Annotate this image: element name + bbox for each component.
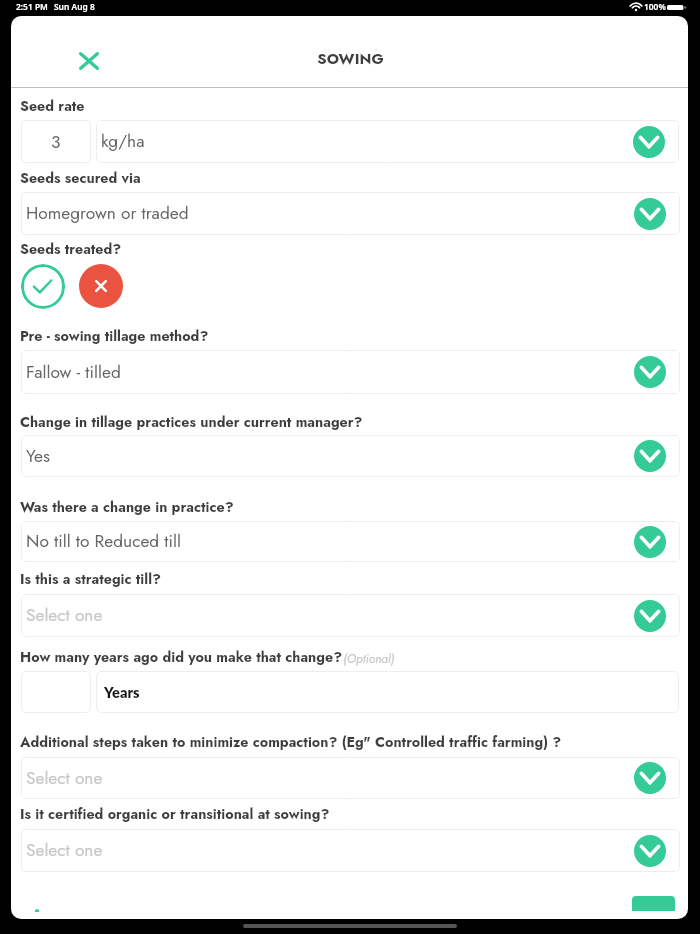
button[interactable]: Years (96, 671, 679, 713)
staticText: Select one (26, 602, 103, 627)
button[interactable]: Open dropdown (634, 198, 666, 230)
staticText: 3 (51, 129, 61, 154)
button[interactable]: No (79, 264, 123, 308)
staticText: Select one (26, 765, 103, 790)
button[interactable]: Select one (21, 757, 680, 799)
staticText: Additional steps taken to minimize compa… (20, 732, 562, 753)
button[interactable] (21, 671, 91, 713)
button[interactable]: Open dropdown (634, 356, 666, 388)
staticText: Seeds secured via (20, 168, 141, 189)
staticText: Seeds treated? (20, 239, 122, 260)
button[interactable]: kg/ha (96, 120, 679, 163)
button[interactable]: 3 (21, 120, 91, 163)
button[interactable]: Open dropdown (634, 526, 666, 558)
button[interactable]: Fallow - tilled (21, 350, 680, 394)
staticText: Years (104, 684, 140, 702)
button[interactable]: No till to Reduced till (21, 521, 680, 562)
staticText: Homegrown or traded (26, 200, 189, 225)
staticText: (Optional) (343, 650, 395, 668)
button[interactable]: Open dropdown (634, 440, 666, 472)
staticText: How many years ago did you make that cha… (20, 647, 343, 668)
staticText: Was there a change in practice? (20, 497, 234, 518)
button[interactable]: Yes (21, 435, 680, 477)
button[interactable]: Open dropdown (634, 762, 666, 794)
button[interactable]: Select one (21, 594, 680, 637)
button[interactable]: Close (79, 52, 99, 70)
button[interactable]: Save (632, 896, 675, 911)
staticText: Seed rate (20, 96, 85, 117)
button[interactable]: Open dropdown (634, 835, 666, 867)
button[interactable]: Open dropdown (633, 126, 665, 158)
staticText: Change in tillage practices under curren… (20, 412, 363, 433)
button[interactable]: Homegrown or traded (21, 192, 680, 235)
button[interactable]: Add (35, 909, 39, 912)
staticText: SOWING (12, 48, 688, 70)
staticText: Is it certified organic or transitional … (20, 804, 330, 825)
staticText: Is this a strategic till? (20, 569, 161, 590)
staticText: Select one (26, 837, 103, 862)
staticText: 2:51 PM (16, 1, 48, 12)
staticText: No till to Reduced till (26, 528, 181, 553)
staticText: Pre - sowing tillage method? (20, 326, 209, 347)
button[interactable]: Open dropdown (634, 600, 666, 632)
staticText: 100% (644, 1, 666, 12)
button[interactable]: Yes (21, 264, 65, 309)
staticText: Yes (26, 443, 50, 468)
button[interactable]: Select one (21, 829, 680, 872)
staticText: Fallow - tilled (26, 359, 121, 384)
staticText: Sun Aug 8 (54, 1, 95, 12)
staticText: kg/ha (101, 128, 145, 153)
